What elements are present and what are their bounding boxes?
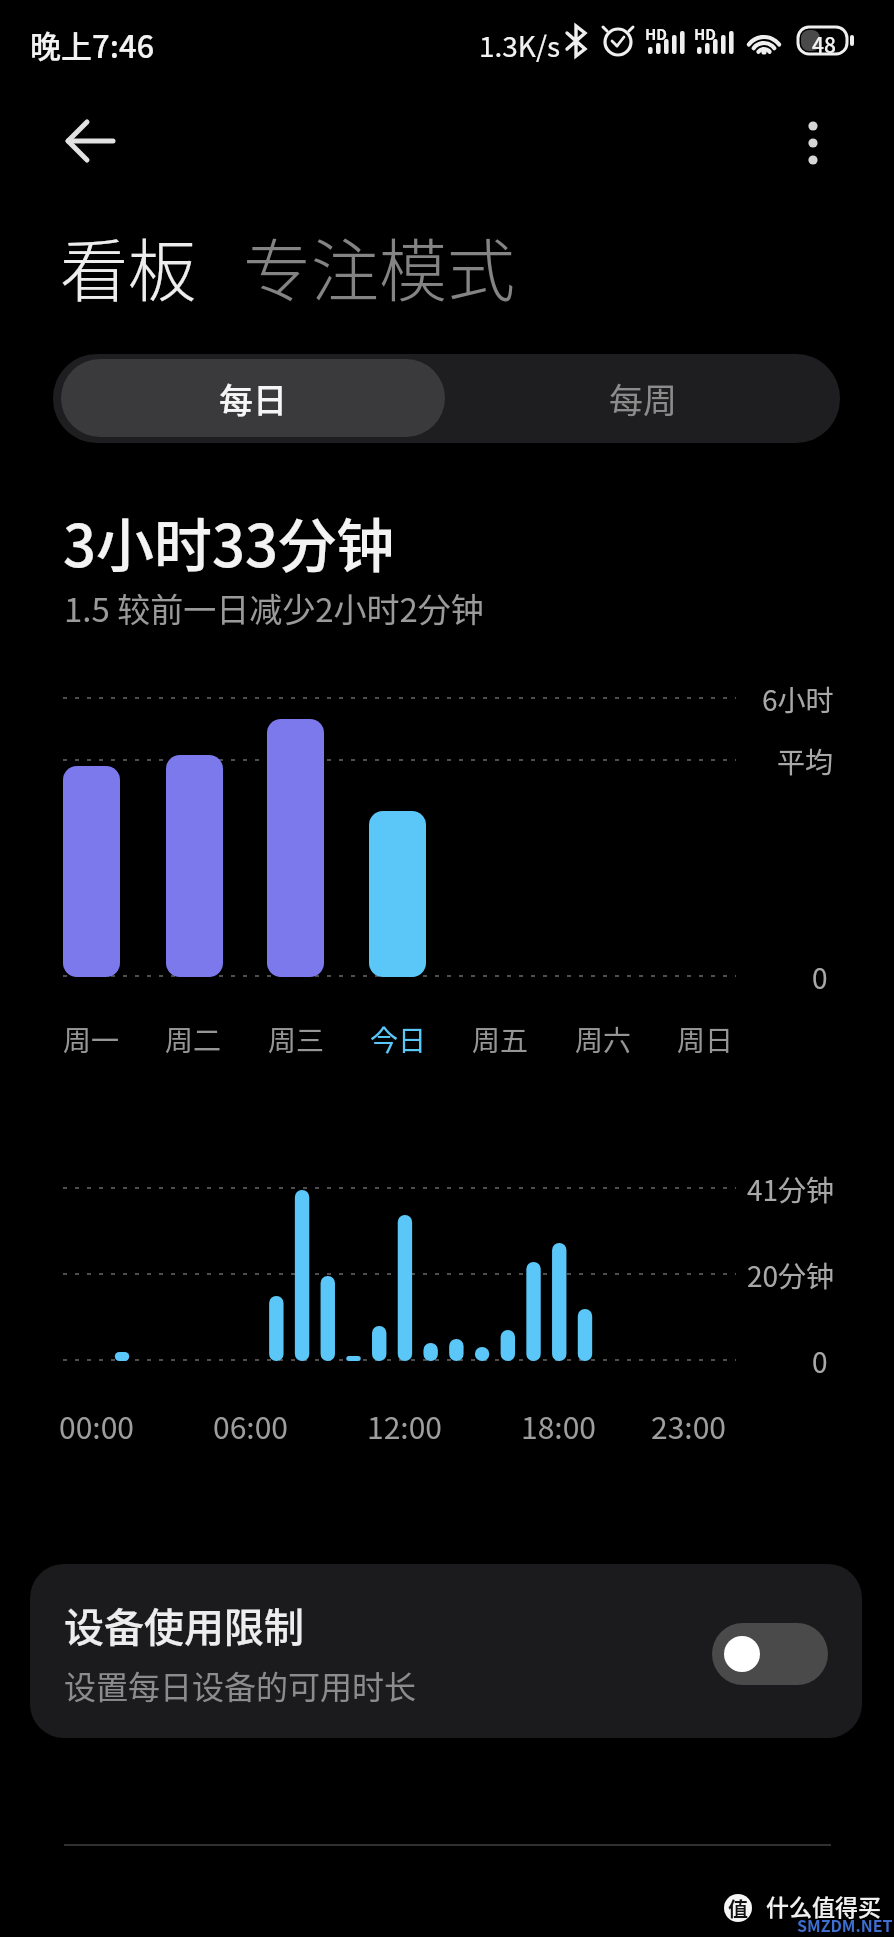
- staticText: 3小时33分钟: [63, 500, 395, 584]
- staticText: 06:00: [213, 1404, 288, 1447]
- staticText: 什么值得买: [766, 1889, 881, 1922]
- staticText: 周三: [268, 1019, 325, 1060]
- staticText: 20分钟: [747, 1255, 835, 1296]
- staticText: 41分钟: [747, 1169, 835, 1210]
- staticText: HD: [645, 23, 668, 45]
- staticText: 00:00: [59, 1404, 134, 1447]
- staticText: 1.3K/s: [479, 25, 561, 66]
- button[interactable]: 专注模式: [243, 217, 516, 315]
- staticText: 周二: [165, 1019, 222, 1060]
- staticText: 12:00: [367, 1404, 442, 1447]
- staticText: 周六: [575, 1019, 632, 1060]
- staticText: 6小时: [762, 679, 834, 720]
- staticText: 18:00: [521, 1404, 596, 1447]
- staticText: 设置每日设备的可用时长: [64, 1662, 417, 1708]
- staticText: 0: [812, 957, 828, 998]
- staticText: 今日: [370, 1019, 427, 1060]
- staticText: 1.5 较前一日减少2小时2分钟: [64, 584, 484, 632]
- staticText: 23:00: [651, 1404, 726, 1447]
- staticText: 专注模式: [243, 217, 516, 315]
- button[interactable]: 每周: [445, 354, 840, 443]
- staticText: 看板: [60, 217, 197, 315]
- staticText: 值: [728, 1894, 748, 1922]
- button[interactable]: 每日: [61, 359, 445, 437]
- staticText: 每周: [609, 374, 677, 423]
- staticText: 48: [812, 29, 836, 59]
- button[interactable]: 设备使用限制: [30, 1564, 862, 1738]
- staticText: 晚上7:46: [30, 22, 155, 67]
- staticText: 周日: [677, 1019, 734, 1060]
- staticText: 设备使用限制: [64, 1596, 304, 1654]
- staticText: 0: [812, 1341, 828, 1382]
- staticText: 每日: [219, 374, 287, 423]
- button[interactable]: [784, 108, 844, 174]
- button[interactable]: [52, 108, 122, 174]
- staticText: 周五: [472, 1019, 529, 1060]
- staticText: 周一: [63, 1019, 120, 1060]
- staticText: HD: [694, 23, 717, 45]
- staticText: SMZDM.NET: [797, 1913, 893, 1936]
- staticText: 平均: [777, 741, 834, 782]
- button[interactable]: [712, 1623, 828, 1685]
